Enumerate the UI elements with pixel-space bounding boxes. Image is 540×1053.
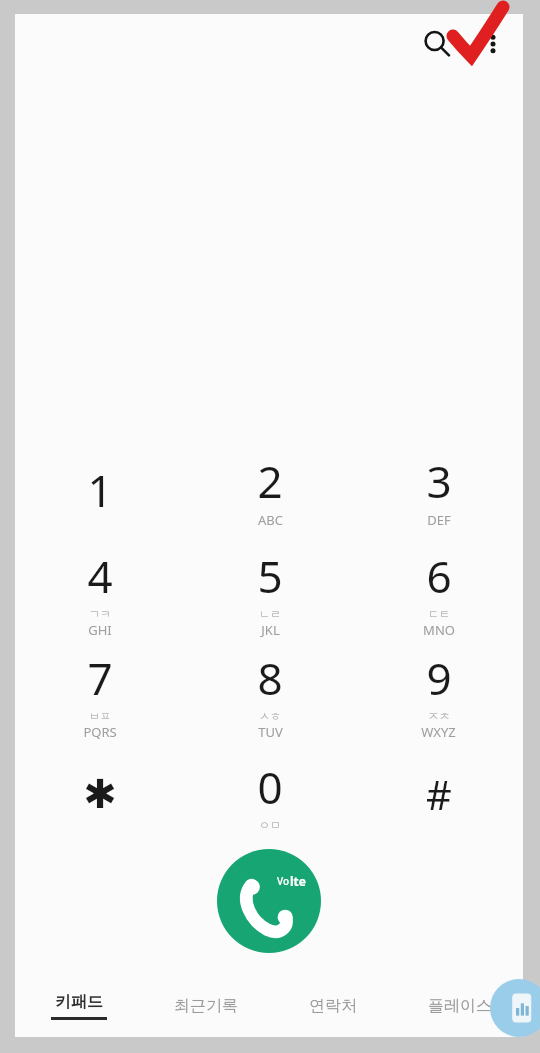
button[interactable]: 5 (185, 541, 354, 643)
staticText: 9 (426, 648, 452, 708)
staticText: lte (290, 873, 306, 889)
button[interactable]: 4 (15, 541, 185, 643)
staticText: ㅂㅍ (89, 709, 111, 723)
staticText: ㅇㅁ (259, 818, 281, 832)
staticText: DEF (427, 511, 451, 529)
button[interactable]: More options (467, 18, 519, 70)
staticText: 플레이스 (428, 996, 492, 1016)
staticText: PQRS (83, 723, 117, 741)
staticText: 3 (426, 451, 452, 511)
staticText: TUV (258, 723, 283, 741)
staticText: ABC (258, 511, 283, 529)
staticText: MNO (423, 621, 455, 639)
button[interactable]: ✱ (15, 745, 185, 843)
staticText: 연락처 (309, 996, 357, 1016)
button[interactable]: 키패드 (15, 975, 142, 1037)
staticText: 0 (257, 757, 283, 817)
staticText: 4 (87, 546, 113, 606)
staticText: Vo (277, 874, 290, 888)
staticText: ㅅㅎ (259, 709, 281, 723)
staticText: ㅈㅊ (428, 709, 450, 723)
staticText: GHI (88, 621, 112, 639)
button[interactable]: 3 (354, 439, 523, 541)
staticText: JKL (261, 621, 280, 639)
staticText: 1 (87, 460, 113, 520)
button[interactable]: Floating shortcut (490, 979, 540, 1037)
staticText: # (426, 767, 452, 821)
button[interactable]: 7 (15, 643, 185, 745)
button[interactable]: 플레이스 (396, 975, 523, 1037)
staticText: 6 (426, 546, 452, 606)
staticText: ㄱㅋ (89, 607, 111, 621)
button[interactable]: Call (217, 849, 321, 953)
button[interactable]: 0 (185, 745, 354, 843)
staticText: 7 (87, 648, 113, 708)
button[interactable]: 연락처 (269, 975, 396, 1037)
button[interactable]: 8 (185, 643, 354, 745)
button[interactable]: 2 (185, 439, 354, 541)
button[interactable]: 6 (354, 541, 523, 643)
button[interactable]: Search (411, 18, 463, 70)
button[interactable]: 1 (15, 439, 185, 541)
button[interactable]: 9 (354, 643, 523, 745)
button[interactable]: # (354, 745, 523, 843)
staticText: ✱ (83, 771, 117, 818)
staticText: WXYZ (421, 723, 456, 741)
staticText: ㄷㅌ (428, 607, 450, 621)
staticText: 2 (257, 451, 283, 511)
staticText: 키패드 (55, 992, 103, 1012)
staticText: 5 (257, 546, 283, 606)
staticText: ㄴㄹ (259, 607, 281, 621)
staticText: 최근기록 (174, 996, 238, 1016)
button[interactable]: 최근기록 (142, 975, 269, 1037)
staticText: 8 (257, 648, 283, 708)
